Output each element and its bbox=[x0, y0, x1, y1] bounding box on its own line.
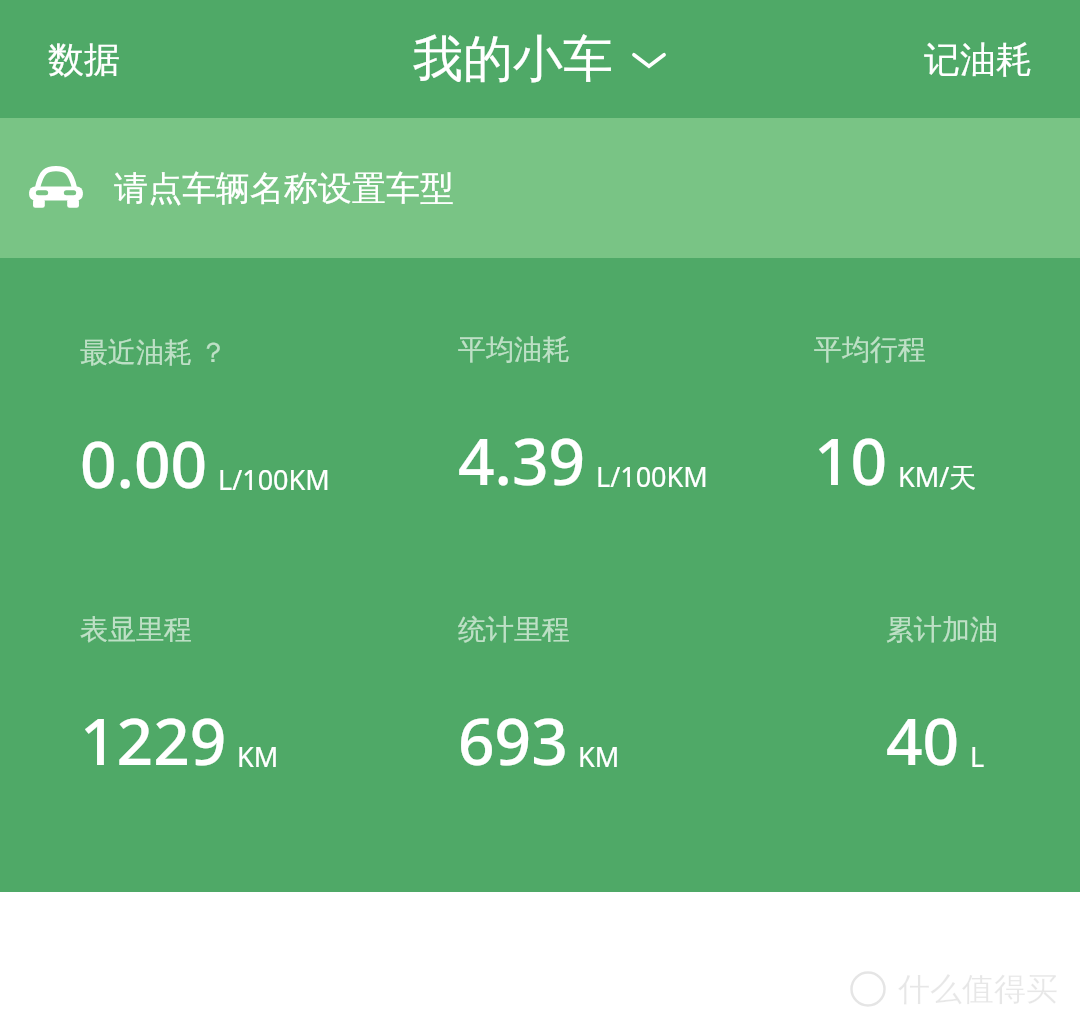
staticText: 平均油耗 bbox=[458, 332, 570, 367]
staticText: KM/天 bbox=[898, 458, 977, 495]
staticText: 统计里程 bbox=[458, 612, 570, 647]
button[interactable]: 记油耗 bbox=[898, 21, 1058, 98]
other: Choose vehicle bbox=[631, 48, 667, 72]
staticText: 1229 bbox=[80, 697, 227, 784]
staticText: 平均行程 bbox=[814, 332, 926, 367]
staticText: L/100KM bbox=[596, 458, 708, 495]
staticText: 0.00 bbox=[80, 420, 208, 507]
staticText: 我的小车 bbox=[413, 28, 613, 91]
staticText: 数据 bbox=[48, 37, 120, 82]
staticText: 693 bbox=[458, 697, 568, 784]
staticText: 累计加油 bbox=[886, 612, 998, 647]
staticText: L bbox=[970, 738, 985, 775]
staticText: 表显里程 bbox=[80, 612, 192, 647]
staticText: 40 bbox=[886, 697, 960, 784]
staticText: L/100KM bbox=[218, 461, 330, 498]
button[interactable]: 请点车辆名称设置车型 bbox=[0, 118, 1080, 258]
staticText: 最近油耗 ？ bbox=[80, 332, 228, 370]
staticText: KM bbox=[237, 738, 279, 775]
button[interactable]: 数据 bbox=[22, 21, 146, 98]
staticText: 请点车辆名称设置车型 bbox=[114, 167, 454, 210]
staticText: KM bbox=[578, 738, 620, 775]
staticText: 什么值得买 bbox=[898, 969, 1058, 1009]
button[interactable]: 我的小车 bbox=[397, 20, 683, 99]
staticText: 4.39 bbox=[458, 417, 586, 504]
staticText: 记油耗 bbox=[924, 37, 1032, 82]
staticText: 10 bbox=[814, 417, 888, 504]
